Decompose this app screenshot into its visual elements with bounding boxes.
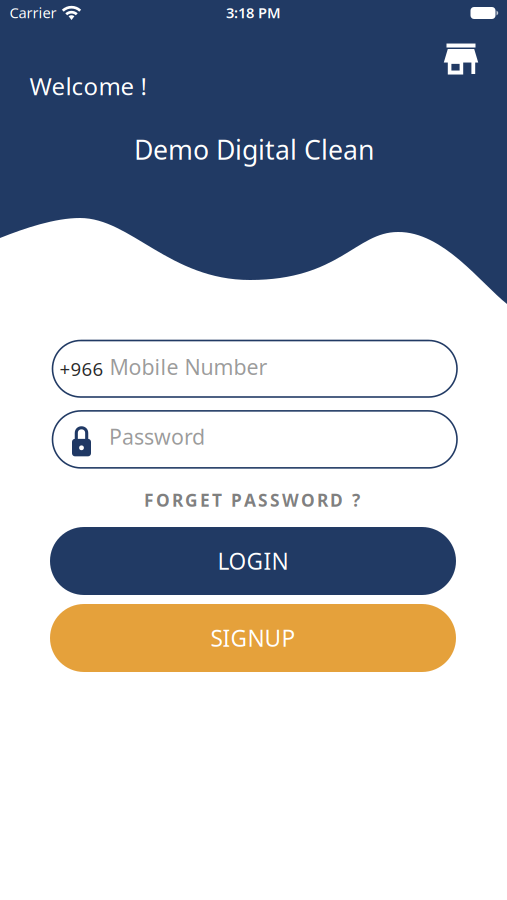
button[interactable]: SIGNUP bbox=[50, 604, 456, 672]
staticText: Carrier bbox=[9, 3, 56, 22]
button[interactable]: Password bbox=[52, 411, 457, 468]
button[interactable]: Store bbox=[443, 41, 479, 77]
staticText: Mobile Number bbox=[109, 353, 267, 381]
staticText: Welcome ! bbox=[29, 70, 146, 102]
button[interactable]: F O R G E T P A S S W O R D ? bbox=[144, 488, 360, 511]
button[interactable]: LOGIN bbox=[50, 527, 456, 595]
staticText: Demo Digital Clean bbox=[134, 132, 374, 167]
staticText: Password bbox=[109, 422, 205, 450]
staticText: F O R G E T P A S S W O R D ? bbox=[144, 488, 360, 511]
staticText: SIGNUP bbox=[210, 623, 295, 653]
button[interactable]: Mobile Number bbox=[52, 340, 457, 397]
staticText: LOGIN bbox=[217, 546, 288, 576]
staticText: +966 bbox=[59, 356, 103, 381]
staticText: 3:18 PM bbox=[226, 3, 281, 22]
